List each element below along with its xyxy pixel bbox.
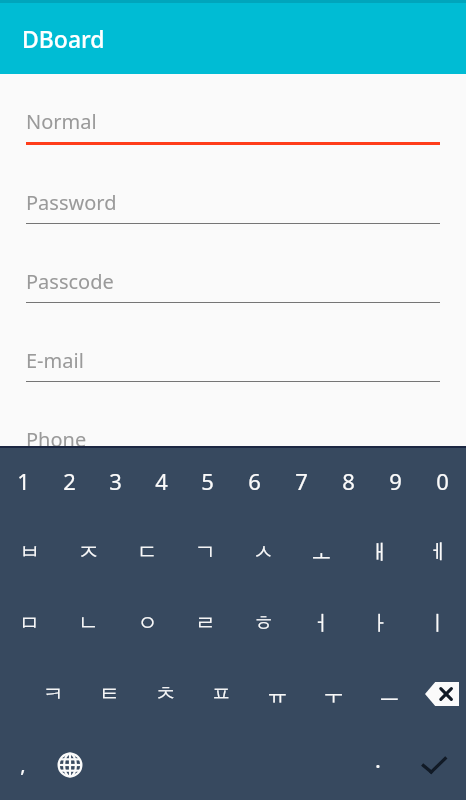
staticText: ㅋ bbox=[43, 681, 64, 707]
button[interactable]: 9 bbox=[372, 446, 419, 516]
staticText: ㅂ bbox=[19, 539, 40, 565]
staticText: ㅏ bbox=[369, 610, 390, 636]
button[interactable]: Phone bbox=[0, 418, 466, 497]
button[interactable]: ㄴ bbox=[59, 587, 118, 658]
staticText: 7 bbox=[295, 466, 308, 496]
staticText: 2 bbox=[63, 466, 76, 496]
button[interactable]: 2 bbox=[46, 446, 92, 516]
staticText: 1 bbox=[17, 466, 30, 496]
staticText: 4 bbox=[155, 466, 168, 496]
button[interactable]: ㅠ bbox=[249, 658, 305, 729]
button[interactable]: ㅋ bbox=[25, 658, 81, 729]
staticText: ㅊ bbox=[155, 681, 176, 707]
staticText: ㄱ bbox=[195, 539, 216, 565]
button[interactable]: Enter bbox=[401, 729, 466, 800]
button[interactable]: ㅇ bbox=[118, 587, 176, 658]
button[interactable]: ㅣ bbox=[408, 587, 466, 658]
button[interactable]: ㅁ bbox=[0, 587, 59, 658]
button[interactable]: ㅐ bbox=[350, 516, 408, 587]
button[interactable]: ㅗ bbox=[292, 516, 350, 587]
button[interactable]: ㅜ bbox=[305, 658, 361, 729]
staticText: Phone bbox=[26, 426, 87, 453]
staticText: ㅗ bbox=[311, 539, 332, 565]
staticText: ㅐ bbox=[369, 539, 390, 565]
button[interactable]: ㄹ bbox=[176, 587, 234, 658]
staticText: ㅣ bbox=[427, 610, 448, 636]
staticText: ㅎ bbox=[253, 610, 274, 636]
button[interactable]: ㄷ bbox=[118, 516, 176, 587]
button[interactable]: ㅍ bbox=[193, 658, 249, 729]
staticText: ㅡ bbox=[379, 681, 400, 707]
button[interactable]: E-mail bbox=[0, 339, 466, 418]
button[interactable]: ㅔ bbox=[408, 516, 466, 587]
staticText: ㄴ bbox=[78, 610, 99, 636]
staticText: 5 bbox=[201, 466, 214, 496]
button[interactable]: 7 bbox=[278, 446, 325, 516]
staticText: Passcode bbox=[26, 268, 114, 295]
staticText: ㅌ bbox=[99, 681, 120, 707]
staticText: DBoard bbox=[22, 23, 105, 54]
button[interactable]: · bbox=[354, 729, 401, 800]
button[interactable]: 5 bbox=[184, 446, 231, 516]
staticText: ㅔ bbox=[427, 539, 448, 565]
button[interactable]: ㅌ bbox=[81, 658, 137, 729]
button[interactable]: ㅂ bbox=[0, 516, 59, 587]
staticText: 9 bbox=[389, 466, 402, 496]
button[interactable]: 4 bbox=[138, 446, 184, 516]
staticText: , bbox=[20, 751, 26, 778]
staticText: ㅁ bbox=[19, 610, 40, 636]
staticText: ㅇ bbox=[137, 610, 158, 636]
button[interactable]: ㅈ bbox=[59, 516, 118, 587]
button[interactable]: Change keyboard language bbox=[46, 729, 93, 800]
button[interactable]: ㅡ bbox=[361, 658, 417, 729]
button[interactable]: Normal bbox=[0, 100, 466, 181]
button[interactable]: , bbox=[0, 729, 46, 800]
button[interactable]: ㅓ bbox=[292, 587, 350, 658]
button[interactable]: 1 bbox=[0, 446, 46, 516]
button[interactable]: ㅊ bbox=[137, 658, 193, 729]
staticText: Password bbox=[26, 189, 117, 216]
staticText: ㅅ bbox=[253, 539, 274, 565]
staticText: ㅜ bbox=[323, 681, 344, 707]
staticText: ㅈ bbox=[78, 539, 99, 565]
staticText: ㄹ bbox=[195, 610, 216, 636]
staticText: 6 bbox=[248, 466, 261, 496]
staticText: 3 bbox=[109, 466, 122, 496]
staticText: ㅓ bbox=[311, 610, 332, 636]
button[interactable]: Password bbox=[0, 181, 466, 260]
button[interactable]: ㅏ bbox=[350, 587, 408, 658]
button[interactable]: ㅎ bbox=[234, 587, 292, 658]
button[interactable]: ㄱ bbox=[176, 516, 234, 587]
staticText: E-mail bbox=[26, 347, 84, 374]
staticText: · bbox=[375, 750, 381, 780]
button[interactable]: ㅅ bbox=[234, 516, 292, 587]
button[interactable]: 3 bbox=[92, 446, 138, 516]
staticText: ㄷ bbox=[137, 539, 158, 565]
staticText: 0 bbox=[436, 466, 449, 496]
button[interactable]: 0 bbox=[419, 446, 466, 516]
staticText: 8 bbox=[342, 466, 355, 496]
staticText: ㅠ bbox=[267, 681, 288, 707]
button[interactable]: 8 bbox=[325, 446, 372, 516]
staticText: ㅍ bbox=[211, 681, 232, 707]
staticText: Normal bbox=[26, 108, 97, 135]
button[interactable]: 6 bbox=[231, 446, 278, 516]
button[interactable]: Passcode bbox=[0, 260, 466, 339]
button[interactable]: Backspace bbox=[417, 658, 466, 729]
